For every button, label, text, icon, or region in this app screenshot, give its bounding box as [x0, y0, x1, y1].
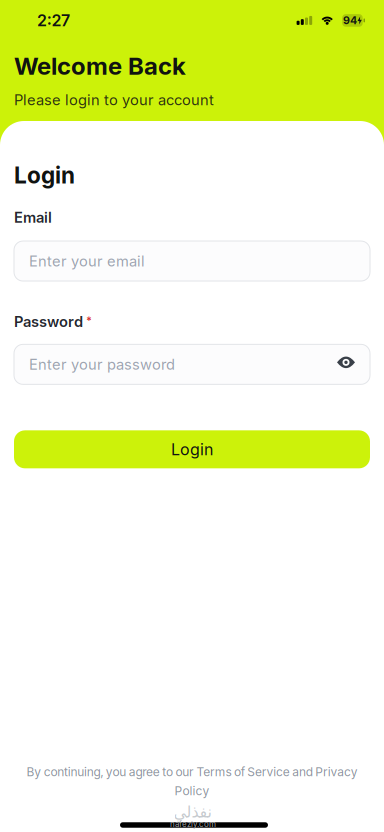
button[interactable]: Login	[14, 430, 370, 468]
staticText: *	[86, 314, 92, 327]
staticText: Policy	[174, 784, 209, 798]
staticText: 2:27	[37, 11, 70, 30]
staticText: 94	[343, 14, 357, 27]
staticText: نفذلي	[173, 803, 211, 821]
button[interactable]: Enter your password	[14, 344, 370, 384]
button[interactable]: By continuing, you agree to our Terms of…	[14, 765, 370, 798]
button[interactable]: Enter your email	[14, 241, 370, 281]
staticText: Login	[171, 440, 213, 459]
staticText: By continuing, you agree to our Terms of…	[26, 765, 358, 779]
staticText: Login	[14, 162, 75, 189]
button[interactable]: Show password	[337, 359, 370, 370]
staticText: Welcome Back	[14, 52, 186, 80]
staticText: Email	[14, 209, 52, 226]
staticText: nafezly.com	[170, 819, 216, 829]
staticText: Password	[14, 313, 83, 330]
staticText: Enter your password	[29, 356, 175, 373]
staticText: Enter your email	[29, 252, 145, 270]
staticText: Please login to your account	[14, 91, 214, 108]
